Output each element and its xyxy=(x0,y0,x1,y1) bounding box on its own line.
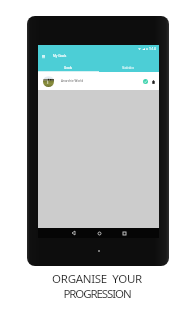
button[interactable]: Goals xyxy=(38,64,98,72)
staticText: Statistics xyxy=(122,66,135,70)
staticText: Anarchie World xyxy=(61,79,141,83)
button[interactable]: Anarchie World xyxy=(38,72,159,90)
staticText: ORGANISE YOUR xyxy=(52,271,142,287)
button[interactable]: Back xyxy=(69,229,77,237)
staticText: My Goals xyxy=(53,54,67,58)
button[interactable]: Open navigation menu xyxy=(40,53,47,60)
staticText: PROGRESSION xyxy=(63,286,131,302)
button[interactable]: Statistics xyxy=(98,64,159,72)
staticText: Goals xyxy=(64,66,72,70)
button[interactable]: Delete goal xyxy=(150,78,157,85)
button[interactable]: Home xyxy=(95,229,103,237)
staticText: 1:14 xyxy=(149,46,156,51)
button[interactable]: Mark goal complete xyxy=(141,77,149,85)
button[interactable]: Recent apps xyxy=(120,229,128,237)
